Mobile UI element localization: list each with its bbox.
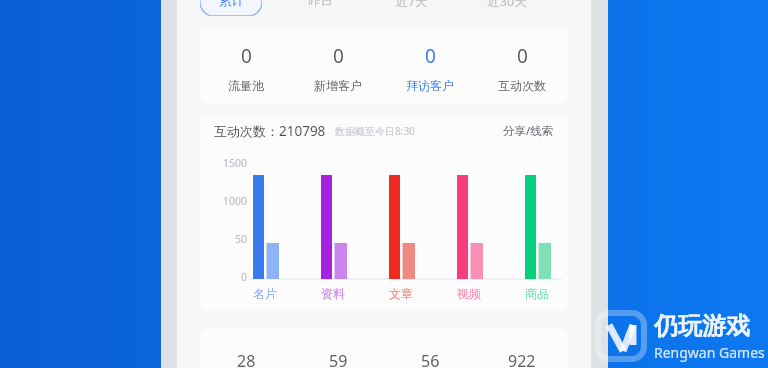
staticText: 分享/线索	[503, 123, 554, 139]
staticText: 新增客户	[314, 78, 362, 93]
staticText: 1500	[223, 156, 248, 170]
staticText: 28	[237, 350, 256, 368]
staticText: 922	[508, 350, 536, 368]
staticText: 0	[425, 43, 436, 69]
staticText: 资料	[321, 286, 345, 301]
staticText: Rengwan Games	[654, 343, 765, 362]
button[interactable]: 0	[292, 28, 384, 104]
staticText: 拜访客户	[406, 78, 454, 93]
button[interactable]: 0	[476, 28, 568, 104]
staticText: 1000	[223, 194, 248, 208]
button[interactable]: 累计	[200, 0, 262, 16]
staticText: 互动次数	[498, 78, 546, 93]
button[interactable]: 近7天	[378, 0, 444, 16]
button[interactable]: 0	[200, 28, 292, 104]
staticText: 0	[517, 43, 528, 69]
staticText: 仍玩游戏	[654, 311, 750, 341]
staticText: 商品	[525, 286, 549, 301]
staticText: 56	[421, 350, 440, 368]
staticText: 流量池	[228, 78, 264, 93]
staticText: 0	[241, 43, 252, 69]
staticText: 数据截至今日8:30	[335, 124, 415, 138]
staticText: 210798	[279, 122, 326, 140]
staticText: 名片	[253, 286, 277, 301]
staticText: 近30天	[487, 0, 527, 10]
staticText: 近7天	[395, 0, 428, 10]
staticText: 互动次数：	[214, 123, 279, 139]
staticText: 50	[235, 232, 248, 246]
staticText: 文章	[389, 286, 413, 301]
staticText: 59	[329, 350, 348, 368]
staticText: 累计	[219, 0, 244, 9]
button[interactable]: 近30天	[471, 0, 543, 16]
button[interactable]: 昨日	[289, 0, 351, 16]
staticText: 视频	[457, 286, 481, 301]
staticText: 0	[333, 43, 344, 69]
staticText: 0	[241, 270, 248, 284]
button[interactable]: 0	[384, 28, 476, 104]
other: Watermark	[592, 305, 768, 363]
button[interactable]: 分享/线索	[503, 123, 554, 139]
staticText: 昨日	[308, 0, 333, 9]
